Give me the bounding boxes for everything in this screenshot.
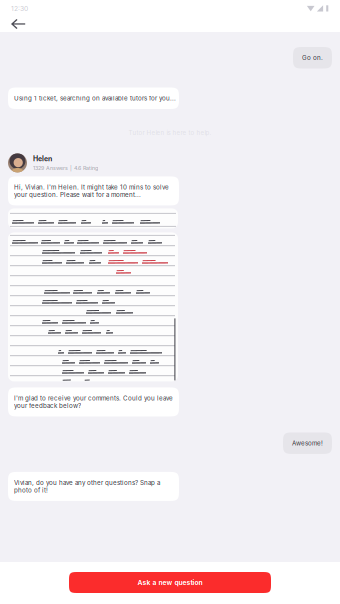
staticText: Go on. xyxy=(302,54,323,61)
staticText: Using 1 ticket, searching on available t… xyxy=(14,94,176,102)
staticText: Awesome! xyxy=(292,439,323,447)
staticText: Tutor Helen is here to help. xyxy=(128,129,211,136)
button[interactable]: Back xyxy=(0,17,34,32)
staticText: Vivian, do you have any other questions?… xyxy=(14,479,160,494)
staticText: I'm glad to receive your comments. Could… xyxy=(14,394,173,409)
staticText: 1329 Answers | 4.6 Rating xyxy=(33,165,98,171)
button[interactable]: Ask a new question xyxy=(0,562,340,604)
staticText: 12:30 xyxy=(11,4,28,13)
staticText: Hi, Vivian. I'm Helen. It might take 10 … xyxy=(14,183,169,198)
staticText: Helen xyxy=(33,154,52,163)
staticText: Ask a new question xyxy=(137,578,202,587)
